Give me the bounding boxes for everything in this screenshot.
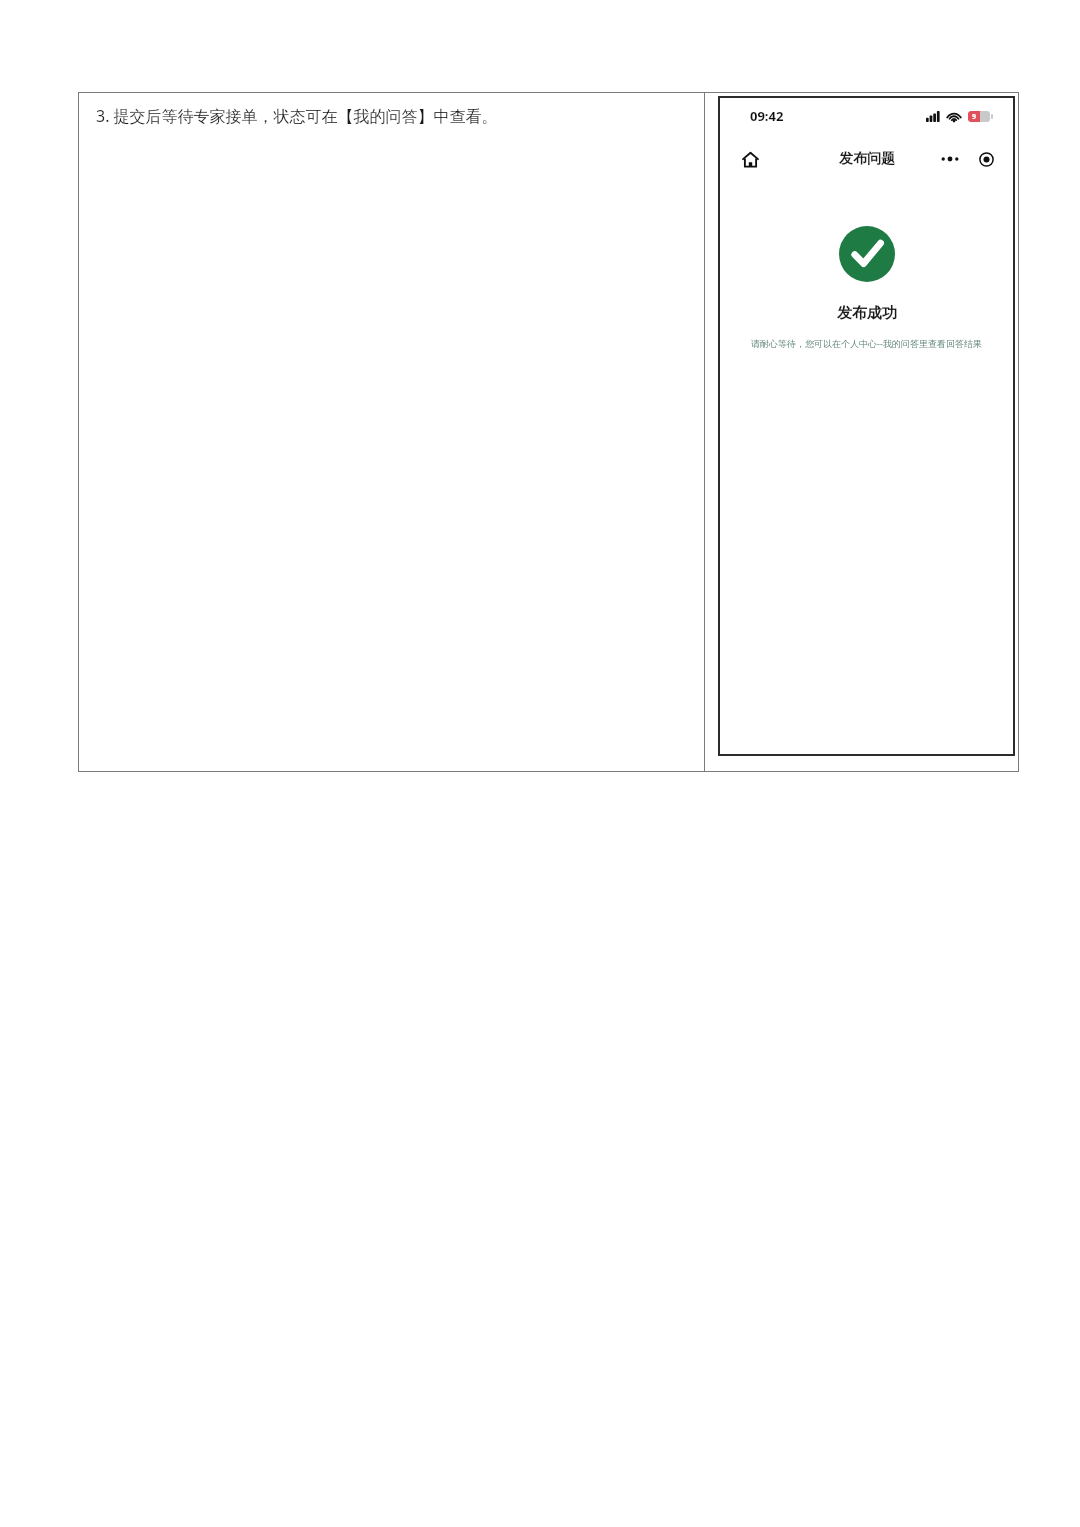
button[interactable]: Close [971, 144, 1001, 174]
staticText: 3. 提交后等待专家接单，状态可在【我的问答】中查看。 [96, 105, 498, 127]
button[interactable]: More [935, 144, 965, 174]
staticText: 9 [972, 112, 977, 122]
staticText: 发布问题 [839, 150, 895, 168]
staticText: 请耐心等待，您可以在个人中心--我的问答里查看回答结果 [751, 337, 982, 349]
staticText: 09:42 [750, 107, 784, 125]
staticText: 发布成功 [837, 304, 897, 323]
button[interactable]: Home [732, 141, 768, 177]
